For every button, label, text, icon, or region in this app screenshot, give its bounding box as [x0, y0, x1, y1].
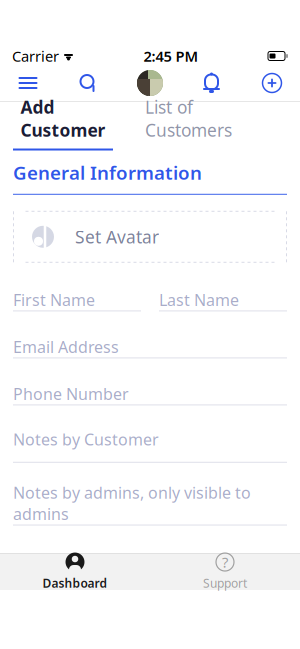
button[interactable]: Menu [16, 71, 40, 95]
staticText: Set Avatar [75, 225, 159, 248]
button[interactable]: Add [260, 71, 284, 95]
staticText: Support [203, 575, 247, 591]
staticText: Last Name [159, 289, 239, 310]
button[interactable]: Notifications [199, 71, 223, 95]
button[interactable]: Set Avatar [13, 211, 287, 263]
button[interactable]: Profile [137, 70, 163, 96]
staticText: Carrier [12, 46, 59, 66]
button[interactable]: List of Customers [130, 95, 247, 150]
button[interactable]: Add Customer [13, 95, 113, 150]
staticText: First Name [13, 289, 95, 310]
staticText: Notes by admins, only visible to admins [13, 482, 251, 524]
staticText: Email Address [13, 336, 119, 357]
staticText: General Information [13, 160, 202, 185]
staticText: Phone Number [13, 383, 129, 404]
staticText: Dashboard [42, 575, 107, 591]
button[interactable]: ? [150, 553, 300, 589]
staticText: 2:45 PM [143, 46, 198, 66]
button[interactable]: Search [76, 71, 100, 95]
staticText: Add Customer [20, 95, 105, 141]
staticText: Notes by Customer [13, 429, 159, 450]
button[interactable]: Dashboard [0, 553, 150, 589]
staticText: List of Customers [145, 95, 232, 141]
staticText: ? [222, 552, 228, 572]
